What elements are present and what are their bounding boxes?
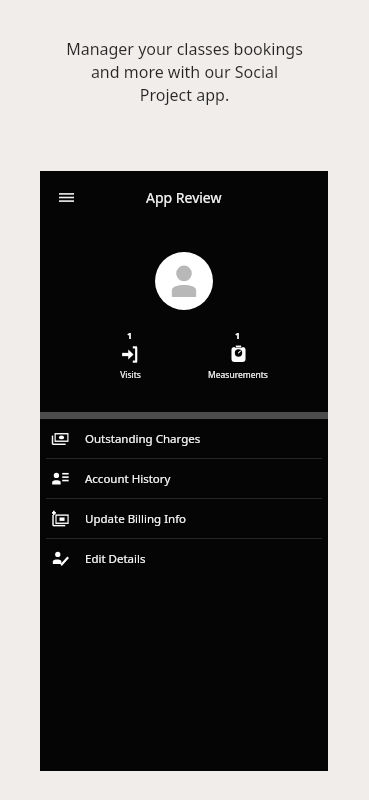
staticText: App Review <box>146 188 222 207</box>
button[interactable]: Outstanding Charges <box>40 419 328 458</box>
staticText: Visits <box>120 369 141 381</box>
other: Visits <box>121 345 140 364</box>
other: Measurements <box>229 345 248 364</box>
staticText: 1 <box>235 329 241 341</box>
staticText: Manager your classes bookings and more w… <box>24 38 345 106</box>
button[interactable]: 1 <box>88 327 172 383</box>
button[interactable]: Edit Details <box>40 539 328 578</box>
staticText: Measurements <box>208 369 268 381</box>
staticText: Update Billing Info <box>85 511 187 527</box>
button[interactable]: 1 <box>196 327 280 383</box>
button[interactable]: Account History <box>40 459 328 498</box>
button[interactable]: Open navigation menu <box>48 179 84 215</box>
button[interactable]: Update Billing Info <box>40 499 328 538</box>
staticText: Outstanding Charges <box>85 431 201 447</box>
staticText: 1 <box>127 329 133 341</box>
staticText: Account History <box>85 471 171 487</box>
staticText: Edit Details <box>85 551 146 567</box>
